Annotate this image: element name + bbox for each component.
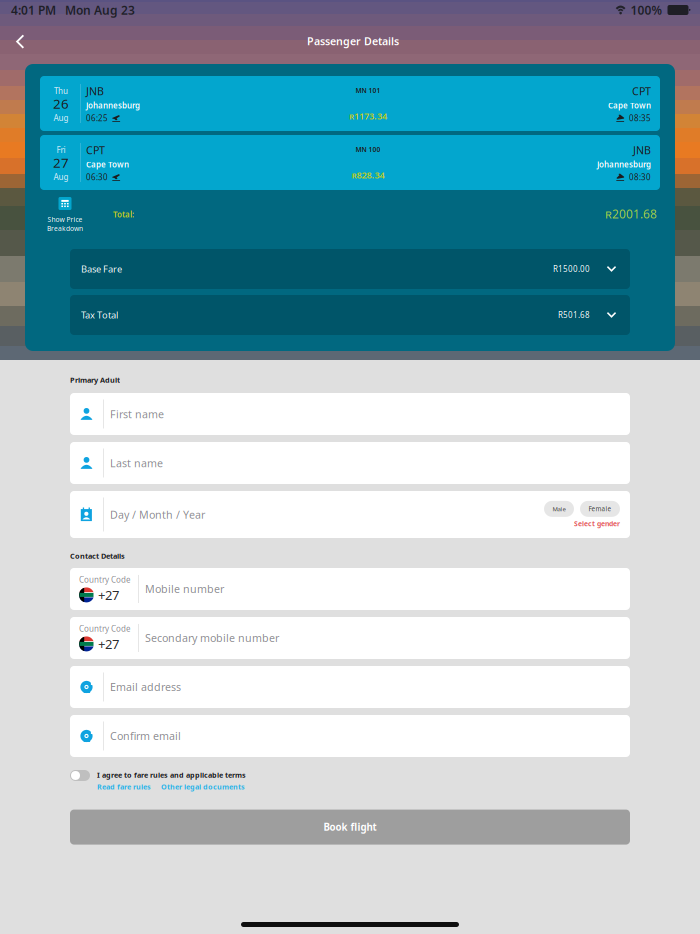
staticText: Male xyxy=(552,505,565,513)
staticText: Aug xyxy=(53,172,68,182)
staticText: Aug xyxy=(53,113,68,123)
staticText: Confirm email xyxy=(110,729,181,743)
staticText: Select gender xyxy=(574,519,620,528)
staticText: Primary Adult xyxy=(70,375,120,385)
button[interactable]: Day / Month / Year xyxy=(70,491,630,538)
button[interactable]: I agree to fare rules and applicable ter… xyxy=(70,770,90,781)
button[interactable]: Country Code xyxy=(70,617,630,659)
staticText: 06:25 xyxy=(86,113,108,123)
staticText: 06:30 xyxy=(86,172,108,182)
staticText: ʀ1173.34 xyxy=(349,110,387,122)
staticText: Mon Aug 23 xyxy=(65,2,135,18)
staticText: Cape Town xyxy=(608,100,651,111)
staticText: 4:01 PM xyxy=(11,2,56,18)
button[interactable]: Book flight xyxy=(70,810,630,845)
staticText: JNB xyxy=(633,143,651,157)
staticText: Contact Details xyxy=(70,551,125,561)
button[interactable]: Base Fare xyxy=(70,249,630,289)
button[interactable]: Confirm email xyxy=(70,715,630,757)
staticText: Email address xyxy=(110,680,181,694)
staticText: Female xyxy=(588,505,611,513)
staticText: 27 xyxy=(53,154,69,171)
button[interactable]: Female xyxy=(580,501,620,517)
staticText: +27 xyxy=(98,586,119,604)
staticText: MN 100 xyxy=(355,145,380,154)
staticText: ʀ2001.68 xyxy=(605,206,657,222)
staticText: Tax Total xyxy=(81,309,118,321)
staticText: Breakdown xyxy=(47,224,83,233)
button[interactable]: Read fare rules xyxy=(97,782,151,792)
button[interactable]: Male xyxy=(544,501,574,517)
staticText: Day / Month / Year xyxy=(110,507,205,522)
staticText: Fri xyxy=(56,145,65,155)
staticText: CPT xyxy=(632,84,651,98)
staticText: 100% xyxy=(630,2,662,18)
staticText: R501.68 xyxy=(558,310,590,320)
staticText: Country Code xyxy=(79,574,131,585)
staticText: 26 xyxy=(53,95,69,112)
button[interactable]: Email address xyxy=(70,666,630,708)
staticText: MN 101 xyxy=(355,86,380,95)
staticText: Johannesburg xyxy=(86,100,140,111)
staticText: Cape Town xyxy=(86,159,129,170)
staticText: Base Fare xyxy=(81,263,122,275)
staticText: Secondary mobile number xyxy=(145,631,279,645)
button[interactable]: Last name xyxy=(70,442,630,484)
staticText: First name xyxy=(110,407,164,421)
staticText: Passenger Details xyxy=(307,34,399,48)
staticText: JNB xyxy=(86,84,104,98)
staticText: Last name xyxy=(110,456,163,470)
staticText: CPT xyxy=(86,143,105,157)
staticText: Other legal documents xyxy=(161,782,245,792)
button[interactable]: Show Price xyxy=(45,197,85,232)
button[interactable]: Country Code xyxy=(70,568,630,610)
staticText: 08:30 xyxy=(629,172,651,182)
staticText: I agree to fare rules and applicable ter… xyxy=(97,770,246,780)
staticText: Read fare rules xyxy=(97,782,151,792)
button[interactable]: Other legal documents xyxy=(161,782,245,792)
staticText: Book flight xyxy=(323,820,376,834)
staticText: Johannesburg xyxy=(597,159,651,170)
staticText: R1500.00 xyxy=(553,264,590,274)
staticText: 08:35 xyxy=(629,113,651,123)
button[interactable]: Tax Total xyxy=(70,295,630,335)
button[interactable]: Select gender xyxy=(574,519,620,528)
staticText: Show Price xyxy=(47,215,82,224)
staticText: Thu xyxy=(54,86,68,96)
button[interactable]: Back xyxy=(6,22,34,62)
button[interactable]: First name xyxy=(70,393,630,435)
staticText: +27 xyxy=(98,635,119,653)
staticText: ʀ828.34 xyxy=(351,169,384,181)
staticText: Total: xyxy=(113,209,134,220)
staticText: Mobile number xyxy=(145,582,224,596)
staticText: Country Code xyxy=(79,623,131,634)
